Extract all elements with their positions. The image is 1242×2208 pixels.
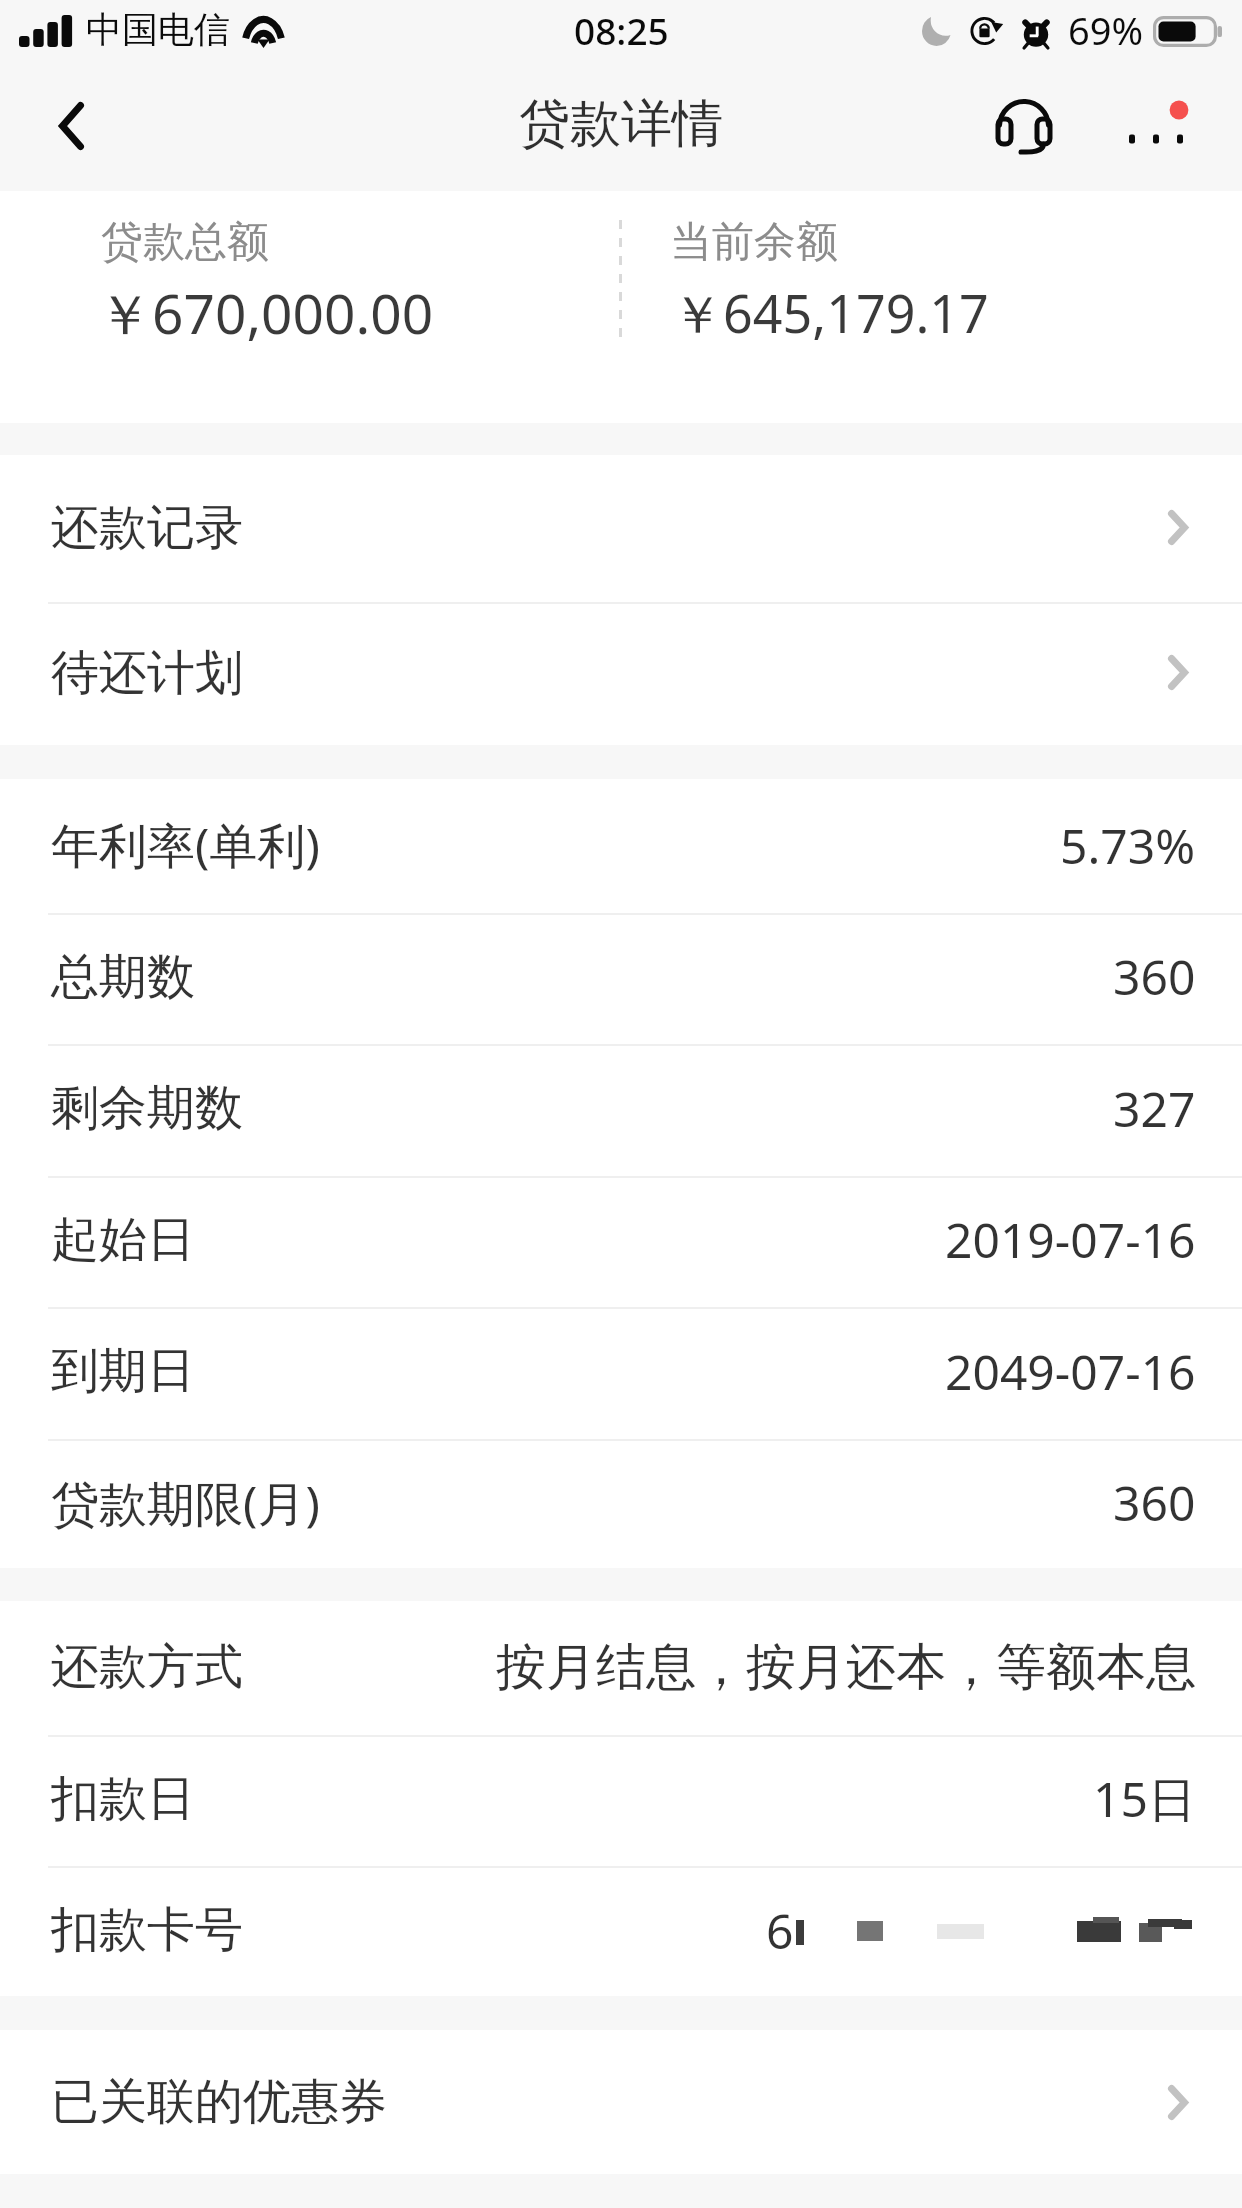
staticText: 5.73% <box>1060 813 1196 878</box>
staticText: 扣款日 <box>51 1769 195 1829</box>
staticText: 还款记录 <box>51 498 243 558</box>
staticText: 中国电信 <box>86 7 230 52</box>
staticText: 待还计划 <box>51 643 243 703</box>
button[interactable]: 待还计划 <box>0 600 1242 745</box>
staticText: 剩余期数 <box>51 1078 243 1138</box>
staticText: 还款方式 <box>51 1637 243 1697</box>
staticText: 已关联的优惠券 <box>51 2072 387 2132</box>
button[interactable]: More options <box>1106 61 1224 191</box>
staticText: 贷款期限(月) <box>51 1470 320 1536</box>
staticText: 起始日 <box>51 1210 195 1270</box>
staticText: ￥645,179.17 <box>671 277 989 348</box>
staticText: 贷款总额 <box>101 216 269 269</box>
staticText: 360 <box>1113 1470 1196 1535</box>
staticText: 327 <box>1113 1076 1196 1141</box>
staticText: 15日 <box>1093 1766 1196 1832</box>
button[interactable]: Customer service <box>968 61 1080 191</box>
staticText: 扣款卡号 <box>51 1900 243 1960</box>
button[interactable]: 还款记录 <box>0 455 1242 600</box>
staticText: 2019-07-16 <box>945 1207 1196 1272</box>
staticText: 69% <box>1068 4 1144 56</box>
staticText: 2049-07-16 <box>945 1339 1196 1404</box>
staticText: 年利率(单利) <box>51 812 320 878</box>
staticText: 到期日 <box>51 1341 195 1401</box>
staticText: 08:25 <box>574 5 669 55</box>
button[interactable]: Back <box>0 61 120 191</box>
staticText: 360 <box>1113 944 1196 1009</box>
staticText: 总期数 <box>51 947 195 1007</box>
staticText: 按月结息，按月还本，等额本息 <box>496 1636 1196 1699</box>
staticText: 贷款详情 <box>519 92 723 156</box>
staticText: 6 <box>766 1898 794 1963</box>
staticText: ￥670,000.00 <box>97 275 434 350</box>
staticText: 当前余额 <box>670 216 838 269</box>
button[interactable]: 已关联的优惠券 <box>0 2030 1242 2174</box>
